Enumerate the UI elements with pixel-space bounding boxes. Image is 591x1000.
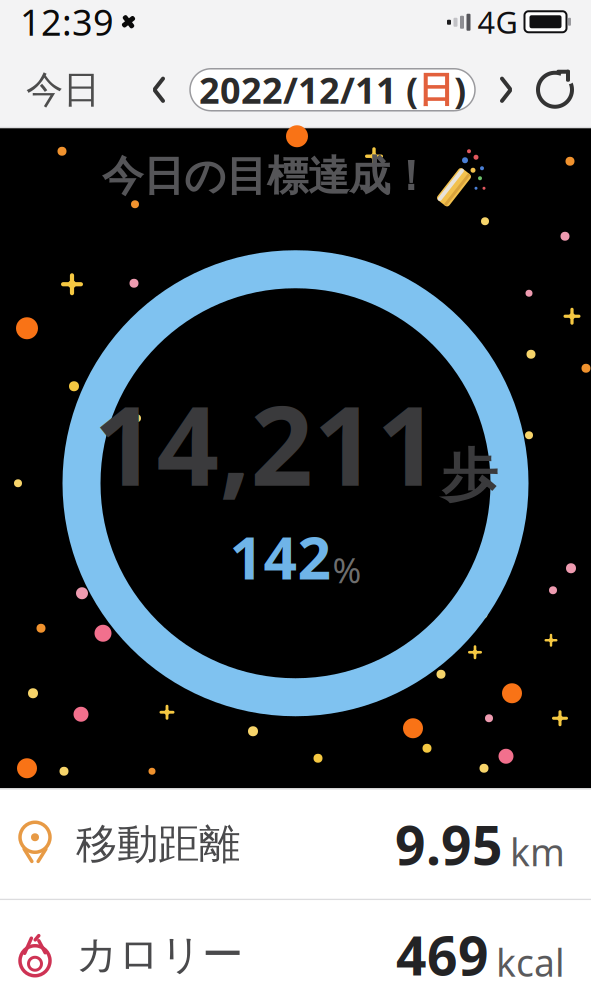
button[interactable]: 今日 (20, 59, 106, 121)
button[interactable]: 2022/12/11 ( (190, 69, 475, 111)
staticText: 142 (229, 518, 331, 596)
button[interactable]: 更新 (533, 68, 577, 112)
staticText: 今日の目標達成！ (102, 151, 431, 202)
staticText: % (332, 547, 361, 593)
staticText: カロリー (76, 929, 243, 980)
staticText: 469 (396, 919, 489, 990)
staticText: 日 (418, 68, 454, 112)
button[interactable]: 移動距離 (0, 790, 591, 899)
staticText: 今日 (26, 67, 100, 113)
button[interactable]: 前の日 (140, 67, 178, 113)
staticText: 4G (477, 1, 517, 42)
staticText: 移動距離 (76, 819, 240, 870)
staticText: 歩 (441, 441, 497, 510)
staticText: 14,211 (93, 371, 439, 516)
button[interactable]: 次の日 (487, 67, 525, 113)
staticText: kcal (496, 938, 565, 987)
staticText: 9.95 (395, 809, 503, 880)
staticText: ) (454, 66, 466, 114)
staticText: 12:39 (20, 0, 114, 46)
button[interactable]: カロリー (0, 900, 591, 1000)
staticText: 2022/12/11 ( (199, 66, 418, 114)
staticText: km (510, 827, 565, 877)
